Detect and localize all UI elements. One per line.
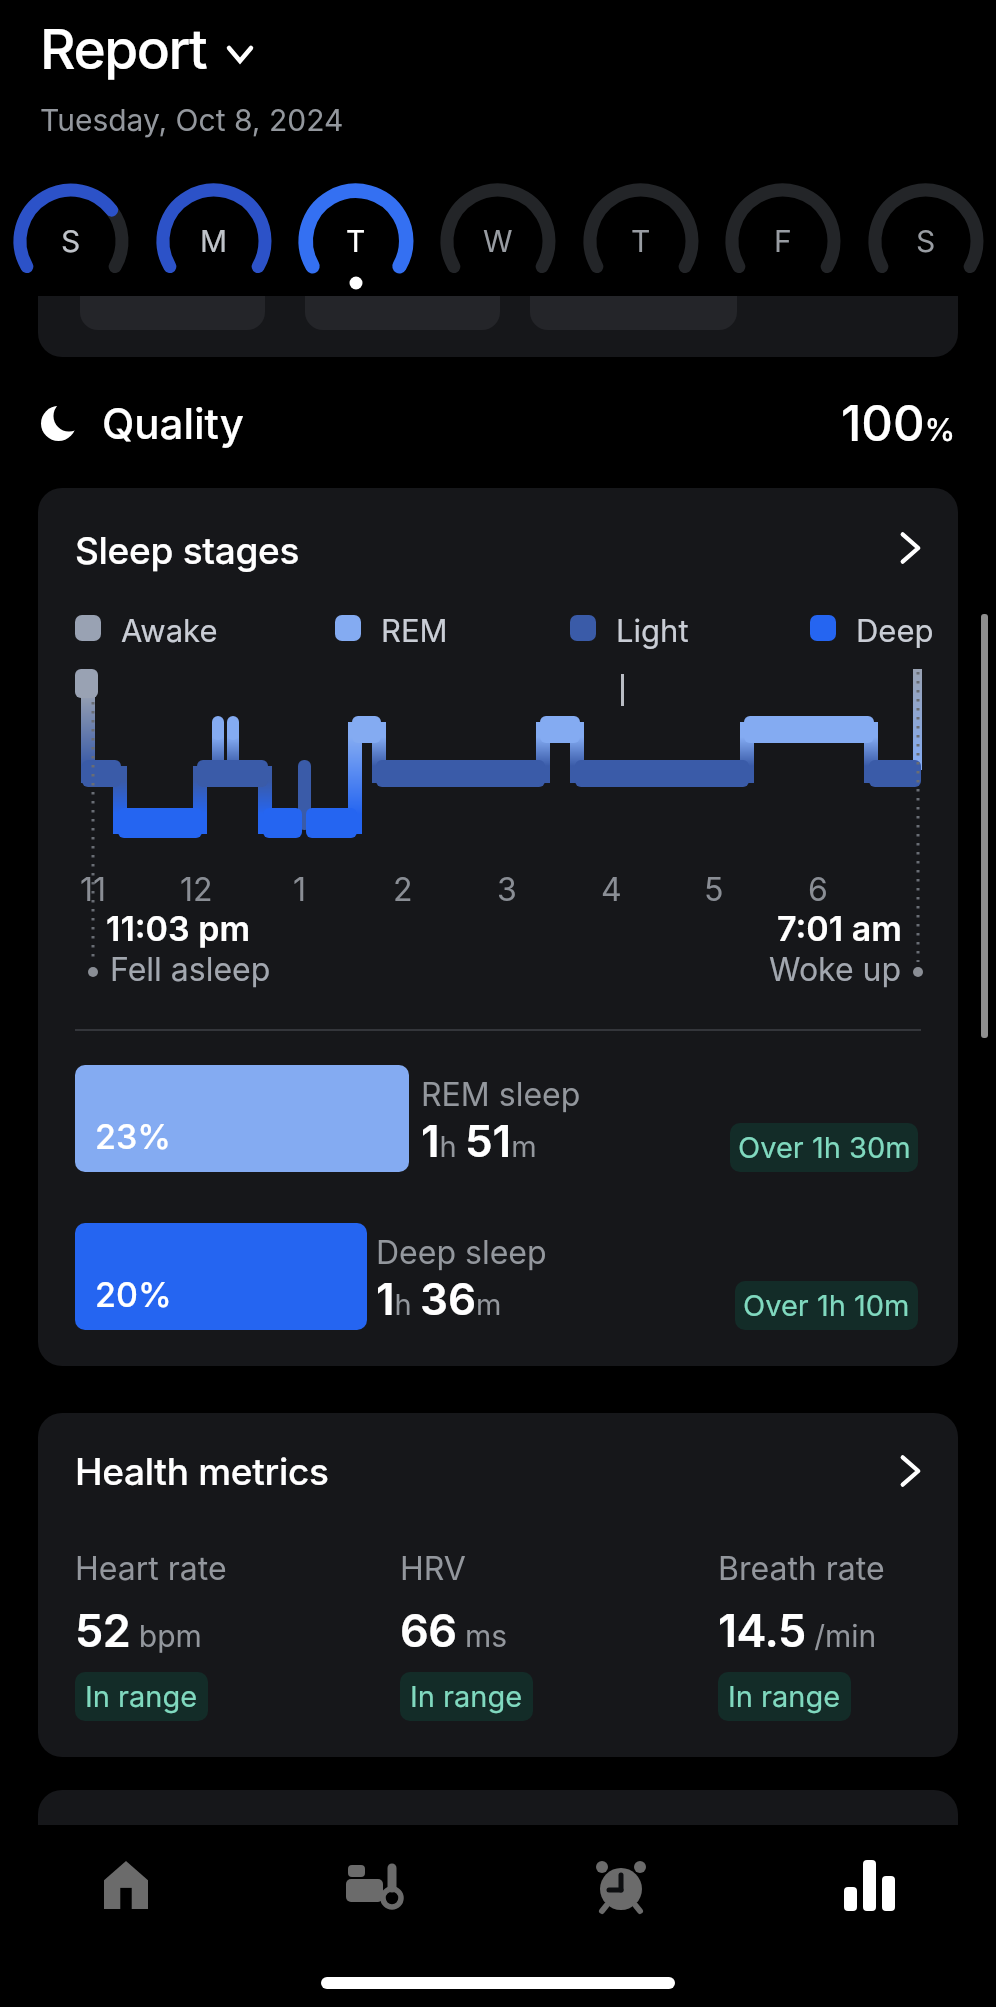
button[interactable]: T (297, 182, 415, 300)
staticText: T (631, 223, 651, 259)
staticText: Tuesday, Oct 8, 2024 (40, 102, 344, 138)
button[interactable] (76, 1848, 176, 1922)
staticText: 20% (95, 1274, 172, 1315)
button[interactable] (571, 1848, 671, 1922)
button[interactable] (819, 1848, 919, 1922)
staticText: 1h 36m (376, 1272, 502, 1325)
staticText: 23% (95, 1116, 172, 1157)
staticText: 1 (293, 870, 307, 909)
staticText: T (346, 223, 366, 259)
staticText: 3 (497, 870, 517, 909)
button[interactable]: M (155, 182, 273, 300)
staticText: In range (410, 1679, 523, 1714)
staticText: In range (728, 1679, 841, 1714)
staticText: Quality (102, 398, 244, 449)
staticText: 1h 51m (421, 1114, 537, 1167)
staticText: Over 1h 10m (743, 1288, 910, 1323)
staticText: S (61, 223, 81, 259)
staticText: In range (85, 1679, 198, 1714)
staticText: HRV (400, 1549, 466, 1588)
staticText: 11 (80, 870, 107, 909)
staticText: 6 (808, 870, 828, 909)
staticText: Deep (856, 612, 934, 650)
staticText: F (774, 223, 792, 259)
staticText: Light (616, 612, 689, 650)
staticText: 5 (704, 870, 724, 909)
staticText: 66 ms (400, 1603, 508, 1657)
staticText: Sleep stages (75, 528, 300, 573)
button[interactable]: S (867, 182, 985, 300)
staticText: M (200, 223, 228, 259)
staticText: 11:03 pm (106, 908, 251, 949)
button[interactable] (40, 16, 256, 82)
staticText: 100% (841, 394, 956, 453)
staticText: 4 (601, 870, 622, 909)
staticText: REM (381, 612, 448, 650)
staticText: S (916, 223, 936, 259)
staticText: Report (40, 16, 207, 83)
button[interactable]: T (582, 182, 700, 300)
staticText: REM sleep (421, 1075, 581, 1114)
staticText: Woke up (769, 950, 902, 989)
staticText: Health metrics (75, 1449, 329, 1494)
staticText: 2 (393, 870, 413, 909)
staticText: Deep sleep (376, 1233, 547, 1272)
button[interactable] (323, 1848, 423, 1922)
button[interactable]: S (12, 182, 130, 300)
button[interactable]: F (724, 182, 842, 300)
staticText: 52 bpm (75, 1603, 202, 1657)
staticText: Fell asleep (110, 950, 271, 989)
staticText: Awake (121, 612, 218, 650)
staticText: Over 1h 30m (738, 1130, 911, 1165)
staticText: 14.5 /min (718, 1603, 877, 1657)
button[interactable]: Health metrics (38, 1413, 958, 1757)
button[interactable]: Sleep stages (38, 488, 958, 1366)
staticText: 7:01 am (777, 908, 902, 949)
staticText: 12 (180, 870, 213, 909)
button[interactable]: W (439, 182, 557, 300)
staticText: Heart rate (75, 1549, 227, 1588)
staticText: W (483, 223, 513, 259)
staticText: Breath rate (718, 1549, 885, 1588)
